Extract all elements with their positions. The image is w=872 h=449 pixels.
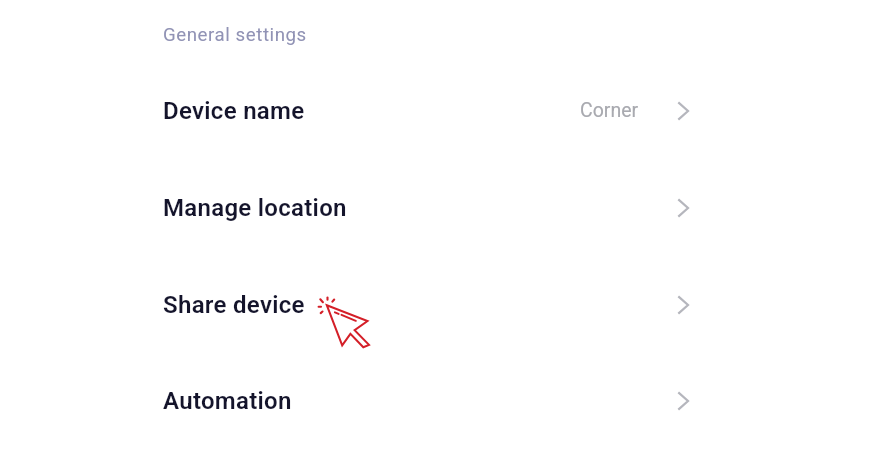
other: Open Device name bbox=[677, 101, 690, 121]
staticText: Automation bbox=[163, 387, 292, 415]
other: Open Manage location bbox=[677, 198, 690, 218]
other: Open Automation bbox=[677, 391, 690, 411]
staticText: General settings bbox=[163, 24, 307, 46]
staticText: Device name bbox=[163, 97, 305, 125]
other: Open Share device bbox=[677, 295, 690, 315]
button[interactable]: Manage location bbox=[163, 177, 690, 239]
button[interactable]: Share device bbox=[163, 274, 690, 336]
staticText: Manage location bbox=[163, 194, 347, 222]
staticText: Corner bbox=[580, 99, 639, 122]
button[interactable]: Automation bbox=[163, 370, 690, 432]
button[interactable]: Device name bbox=[163, 80, 690, 142]
staticText: Share device bbox=[163, 291, 305, 319]
